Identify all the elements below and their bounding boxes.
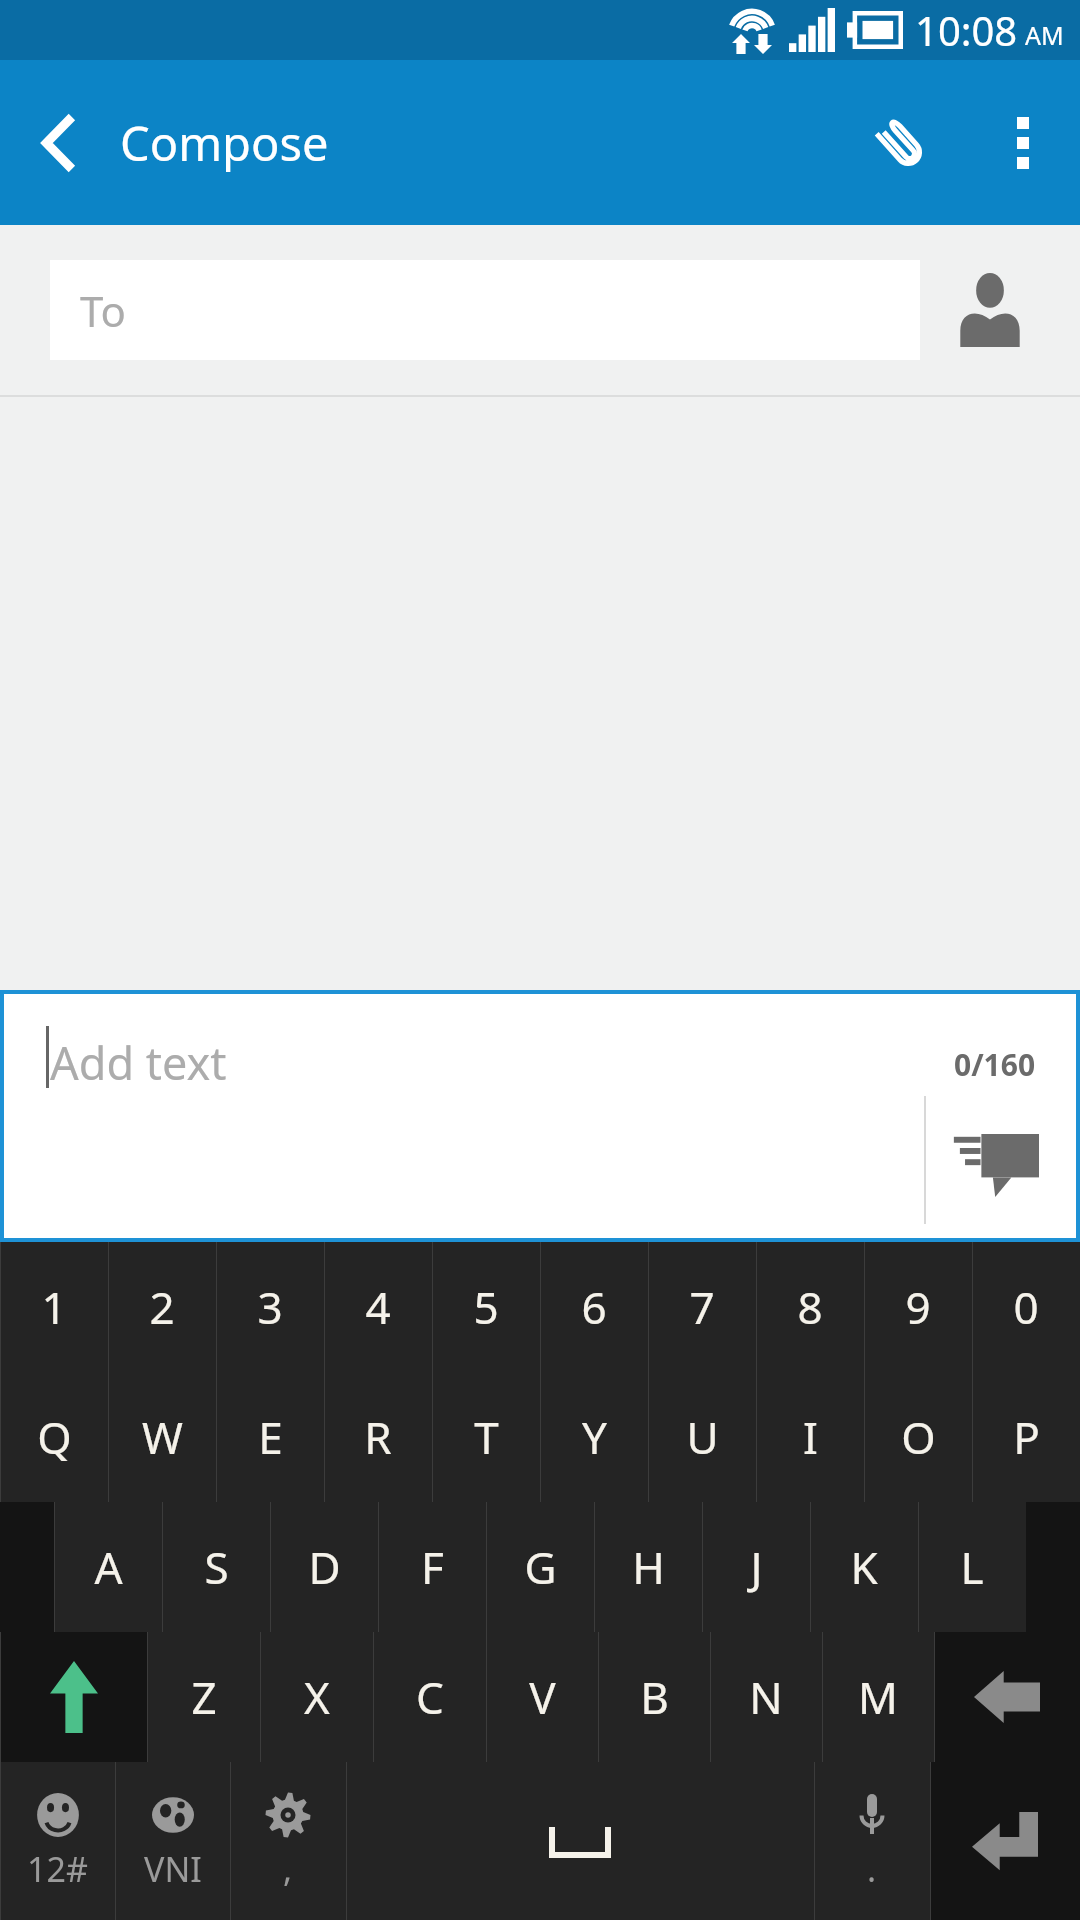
staticText: Z (191, 1667, 217, 1727)
button[interactable]: L (918, 1502, 1026, 1632)
button[interactable]: S (162, 1502, 270, 1632)
button[interactable]: Backspace (934, 1632, 1080, 1762)
staticText: Add text (50, 1032, 227, 1093)
button[interactable]: Q (0, 1372, 108, 1502)
staticText: W (142, 1407, 183, 1467)
button[interactable]: R (324, 1372, 432, 1502)
staticText: 1 (41, 1277, 67, 1337)
staticText: N (749, 1667, 783, 1727)
staticText: Y (582, 1407, 607, 1467)
button[interactable]: H (594, 1502, 702, 1632)
staticText: M (858, 1667, 898, 1727)
staticText: AM (1025, 18, 1064, 52)
staticText: A (94, 1537, 123, 1597)
button[interactable]: 4 (324, 1242, 432, 1372)
staticText: , (283, 1846, 293, 1892)
button[interactable]: Y (540, 1372, 648, 1502)
staticText: X (304, 1667, 330, 1727)
button[interactable]: E (216, 1372, 324, 1502)
staticText: T (474, 1407, 499, 1467)
staticText: B (640, 1667, 669, 1727)
button[interactable]: Voice input (814, 1762, 930, 1920)
button[interactable]: 8 (756, 1242, 864, 1372)
staticText: K (850, 1537, 878, 1597)
button[interactable]: J (702, 1502, 810, 1632)
button[interactable]: X (260, 1632, 373, 1762)
button[interactable]: D (270, 1502, 378, 1632)
button[interactable]: F (378, 1502, 486, 1632)
staticText: 5 (473, 1277, 499, 1337)
button[interactable]: V (486, 1632, 598, 1762)
staticText: 7 (689, 1277, 715, 1337)
staticText: R (364, 1407, 392, 1467)
button[interactable]: To (50, 260, 920, 360)
staticText: H (632, 1537, 665, 1597)
button[interactable]: 5 (432, 1242, 540, 1372)
button[interactable]: Enter (930, 1762, 1080, 1920)
staticText: 4 (365, 1277, 391, 1337)
button[interactable]: A (54, 1502, 162, 1632)
button[interactable]: 2 (108, 1242, 216, 1372)
button[interactable]: More options (965, 60, 1080, 225)
staticText: 10:08 (915, 3, 1018, 57)
button[interactable]: Add recipient (920, 225, 1060, 395)
button[interactable]: B (598, 1632, 710, 1762)
button[interactable]: N (710, 1632, 822, 1762)
staticText: 3 (257, 1277, 283, 1337)
staticText: E (258, 1407, 283, 1467)
staticText: Q (37, 1407, 72, 1467)
staticText: L (960, 1537, 984, 1597)
staticText: F (421, 1537, 444, 1597)
button[interactable]: Language (115, 1762, 230, 1920)
button[interactable]: 0 (972, 1242, 1080, 1372)
button[interactable]: G (486, 1502, 594, 1632)
button[interactable]: W (108, 1372, 216, 1502)
staticText: 9 (905, 1277, 931, 1337)
button[interactable]: Back (0, 60, 120, 225)
staticText: S (204, 1537, 229, 1597)
button[interactable]: Settings (230, 1762, 346, 1920)
staticText: 12# (27, 1846, 88, 1892)
button[interactable]: Z (147, 1632, 260, 1762)
button[interactable]: 3 (216, 1242, 324, 1372)
button[interactable]: 7 (648, 1242, 756, 1372)
button[interactable]: Add text (4, 994, 1076, 1238)
staticText: To (80, 282, 126, 339)
staticText: I (803, 1407, 818, 1467)
staticText: G (524, 1537, 557, 1597)
button[interactable]: 1 (0, 1242, 108, 1372)
button[interactable]: I (756, 1372, 864, 1502)
staticText: 6 (581, 1277, 607, 1337)
staticText: V (529, 1667, 556, 1727)
button[interactable]: M (822, 1632, 934, 1762)
button[interactable]: C (373, 1632, 486, 1762)
staticText: 8 (797, 1277, 823, 1337)
staticText: VNI (144, 1846, 202, 1892)
staticText: J (750, 1537, 763, 1597)
staticText: 2 (149, 1277, 175, 1337)
button[interactable]: K (810, 1502, 918, 1632)
button[interactable]: 9 (864, 1242, 972, 1372)
button[interactable]: P (972, 1372, 1080, 1502)
button[interactable]: Send message (936, 1114, 1056, 1210)
staticText: D (308, 1537, 341, 1597)
staticText: Compose (120, 111, 329, 175)
staticText: O (901, 1407, 936, 1467)
staticText: C (416, 1667, 444, 1727)
button[interactable]: T (432, 1372, 540, 1502)
button[interactable]: Symbols (0, 1762, 115, 1920)
button[interactable]: Space (346, 1762, 814, 1920)
staticText: P (1013, 1407, 1040, 1467)
staticText: U (686, 1407, 719, 1467)
button[interactable]: 6 (540, 1242, 648, 1372)
button[interactable]: O (864, 1372, 972, 1502)
staticText: 0 (1013, 1277, 1039, 1337)
staticText: . (867, 1846, 877, 1892)
staticText: 0/160 (954, 1044, 1036, 1085)
button[interactable]: U (648, 1372, 756, 1502)
button[interactable]: Shift (0, 1632, 147, 1762)
button[interactable]: Attach (835, 60, 965, 225)
